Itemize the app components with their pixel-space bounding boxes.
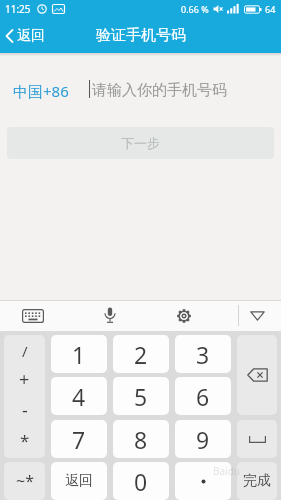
staticText: 1: [72, 339, 86, 370]
button[interactable]: 5: [113, 377, 169, 415]
button[interactable]: [21, 308, 45, 324]
button[interactable]: 完成: [237, 462, 277, 500]
button[interactable]: 返回: [51, 462, 107, 500]
button[interactable]: 返回: [5, 27, 45, 45]
staticText: 0.66 %: [181, 3, 209, 15]
staticText: 中国+86: [13, 81, 69, 101]
staticText: 验证手机号码: [96, 26, 186, 45]
button[interactable]: 4: [51, 377, 107, 415]
staticText: 5: [134, 381, 148, 412]
staticText: +: [19, 367, 30, 392]
staticText: 7: [72, 424, 86, 455]
staticText: -: [22, 398, 28, 423]
button[interactable]: 3: [175, 335, 231, 373]
staticText: 9: [196, 424, 210, 455]
button[interactable]: ~*: [4, 462, 45, 500]
button[interactable]: 6: [175, 377, 231, 415]
staticText: ~*: [16, 470, 34, 492]
staticText: 返回: [65, 472, 93, 490]
staticText: 4: [72, 381, 86, 412]
staticText: 下一步: [121, 135, 160, 151]
staticText: 请输入你的手机号码: [92, 81, 227, 100]
staticText: 2: [134, 339, 148, 370]
staticText: 返回: [17, 27, 45, 45]
button[interactable]: [103, 306, 117, 325]
staticText: /: [22, 341, 28, 361]
staticText: *: [20, 429, 30, 452]
staticText: 0: [134, 466, 148, 497]
button[interactable]: 2: [113, 335, 169, 373]
staticText: 完成: [243, 472, 271, 490]
staticText: 8: [134, 424, 148, 455]
button[interactable]: 0: [113, 462, 169, 500]
button[interactable]: 9: [175, 420, 231, 458]
staticText: 3: [196, 339, 210, 370]
button[interactable]: 中国+86: [13, 81, 69, 101]
staticText: 11:25: [5, 2, 31, 16]
button[interactable]: 7: [51, 420, 107, 458]
staticText: 6: [196, 381, 210, 412]
button[interactable]: 下一步: [7, 127, 274, 159]
button[interactable]: 8: [113, 420, 169, 458]
staticText: 64: [265, 3, 276, 15]
button[interactable]: [175, 462, 231, 500]
button[interactable]: [237, 335, 277, 415]
button[interactable]: /: [4, 335, 45, 458]
button[interactable]: [237, 420, 277, 458]
button[interactable]: [248, 310, 266, 322]
staticText: Baidu: [213, 464, 241, 478]
button[interactable]: 1: [51, 335, 107, 373]
button[interactable]: [175, 307, 192, 324]
